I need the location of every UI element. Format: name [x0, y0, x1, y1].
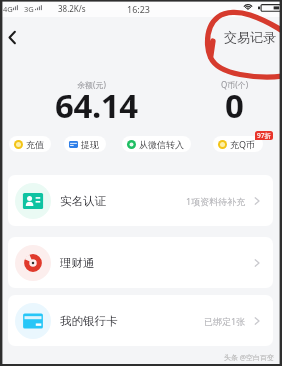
staticText: 充值	[26, 139, 44, 150]
staticText: 1项资料待补充	[186, 195, 246, 207]
button[interactable]: 从微信转入	[122, 136, 191, 152]
staticText: 从微信转入	[139, 139, 184, 150]
button[interactable]: 提现	[64, 136, 106, 152]
staticText: 提现	[81, 139, 99, 150]
button[interactable]: 我的银行卡	[8, 295, 273, 346]
staticText: 38.2K/s	[58, 3, 86, 14]
staticText: 充Q币	[230, 138, 256, 150]
staticText: Q币(个)	[221, 79, 249, 90]
staticText: 4G	[3, 4, 13, 14]
staticText: 余额(元)	[77, 79, 106, 90]
button[interactable]: 交易记录	[220, 25, 280, 49]
staticText: 我的银行卡	[60, 314, 118, 328]
button[interactable]: 充值	[9, 136, 51, 152]
button[interactable]: 实名认证	[8, 175, 273, 226]
staticText: 16:23	[127, 3, 151, 15]
staticText: 3G	[24, 4, 34, 14]
button[interactable]: 充Q币	[213, 136, 263, 152]
staticText: 理财通	[60, 256, 95, 270]
staticText: 头条 @空白百变	[224, 353, 275, 363]
staticText: 实名认证	[60, 194, 106, 208]
staticText: 已绑定1张	[204, 315, 246, 327]
button[interactable]: 理财通	[8, 237, 273, 288]
staticText: 97折	[257, 131, 271, 140]
button[interactable]: Back	[0, 25, 24, 49]
staticText: 0	[225, 83, 244, 128]
staticText: 交易记录	[224, 29, 276, 45]
staticText: 64.14	[55, 83, 138, 128]
